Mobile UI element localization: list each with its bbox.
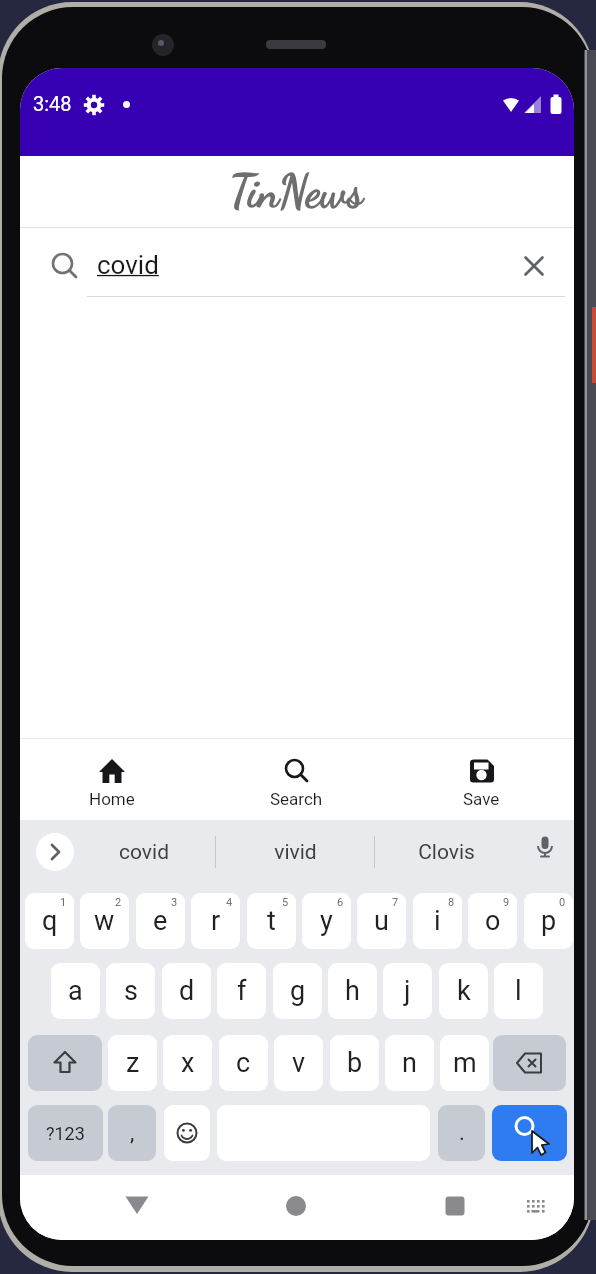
staticText: 3 [171, 896, 178, 909]
staticText: s [124, 975, 138, 1007]
button[interactable] [285, 1195, 307, 1217]
button[interactable]: s [106, 963, 155, 1019]
button[interactable]: . [438, 1105, 485, 1161]
staticText: vivid [274, 840, 317, 865]
button[interactable] [28, 1035, 102, 1091]
staticText: 0 [559, 896, 566, 909]
button[interactable]: a [51, 963, 100, 1019]
button[interactable]: u [357, 893, 406, 949]
staticText: 8 [448, 896, 455, 909]
staticText: r [211, 905, 221, 937]
button[interactable]: d [162, 963, 211, 1019]
button[interactable]: x [163, 1035, 212, 1091]
staticText: j [404, 975, 411, 1007]
staticText: k [457, 975, 471, 1007]
staticText: l [515, 975, 522, 1007]
staticText: 1 [60, 896, 67, 909]
staticText: u [374, 905, 389, 937]
staticText: h [345, 975, 360, 1007]
button[interactable]: w [80, 893, 129, 949]
staticText: n [402, 1047, 417, 1079]
staticText: 3:48 [33, 92, 72, 115]
button[interactable] [522, 254, 546, 278]
button[interactable] [36, 833, 74, 871]
staticText: Clovis [418, 840, 475, 865]
staticText: Save [463, 789, 500, 809]
button[interactable]: b [330, 1035, 379, 1091]
staticText: d [179, 975, 195, 1007]
staticText: c [236, 1047, 251, 1079]
staticText: i [434, 905, 441, 937]
staticText: Home [89, 789, 135, 809]
staticText: w [94, 905, 115, 937]
button[interactable]: y [302, 893, 351, 949]
button[interactable] [445, 1196, 465, 1216]
button[interactable]: Save [389, 738, 574, 820]
button[interactable]: p [524, 893, 573, 949]
staticText: p [541, 905, 557, 937]
button[interactable]: Search [204, 738, 389, 820]
staticText: Search [270, 789, 323, 809]
button[interactable]: k [439, 963, 488, 1019]
staticText: x [181, 1047, 195, 1079]
staticText: TinNews [230, 166, 364, 219]
button[interactable]: , [108, 1105, 156, 1161]
staticText: 5 [282, 896, 289, 909]
staticText: a [68, 975, 83, 1007]
button[interactable]: e [136, 893, 185, 949]
staticText: e [153, 905, 168, 937]
staticText: covid [97, 250, 159, 280]
button[interactable] [492, 1105, 567, 1161]
staticText: z [126, 1047, 140, 1079]
button[interactable] [493, 1035, 566, 1091]
button[interactable]: f [217, 963, 266, 1019]
button[interactable]: Home [20, 738, 204, 820]
button[interactable] [533, 835, 557, 859]
button[interactable]: i [413, 893, 462, 949]
button[interactable]: r [191, 893, 240, 949]
staticText: 7 [392, 896, 399, 909]
staticText: g [290, 975, 306, 1007]
staticText: 6 [337, 896, 344, 909]
staticText: ?123 [46, 1123, 85, 1144]
staticText: . [459, 1120, 465, 1146]
button[interactable]: covid [20, 228, 574, 298]
staticText: f [237, 975, 247, 1007]
staticText: q [42, 905, 58, 937]
button[interactable] [124, 1195, 150, 1217]
staticText: 9 [503, 896, 510, 909]
button[interactable]: h [328, 963, 377, 1019]
button[interactable] [525, 1199, 547, 1216]
button[interactable] [164, 1105, 210, 1161]
staticText: y [320, 905, 333, 937]
button[interactable]: vivid [235, 834, 355, 870]
staticText: o [485, 905, 501, 937]
button[interactable]: z [108, 1035, 157, 1091]
button[interactable]: l [494, 963, 543, 1019]
staticText: 2 [115, 896, 122, 909]
button[interactable]: v [274, 1035, 323, 1091]
staticText: , [130, 1120, 135, 1146]
button[interactable]: covid [84, 834, 204, 870]
staticText: v [292, 1047, 306, 1079]
button[interactable]: ?123 [28, 1105, 103, 1161]
staticText: t [267, 905, 276, 937]
button[interactable]: n [385, 1035, 434, 1091]
staticText: m [453, 1047, 477, 1079]
button[interactable]: q [25, 893, 74, 949]
button[interactable]: c [219, 1035, 268, 1091]
button[interactable]: t [247, 893, 296, 949]
button[interactable]: o [468, 893, 517, 949]
staticText: 4 [226, 896, 233, 909]
staticText: b [347, 1047, 363, 1079]
button[interactable]: g [273, 963, 322, 1019]
button[interactable]: Clovis [386, 834, 506, 870]
button[interactable]: j [383, 963, 432, 1019]
button[interactable]: m [440, 1035, 489, 1091]
staticText: covid [119, 840, 169, 865]
